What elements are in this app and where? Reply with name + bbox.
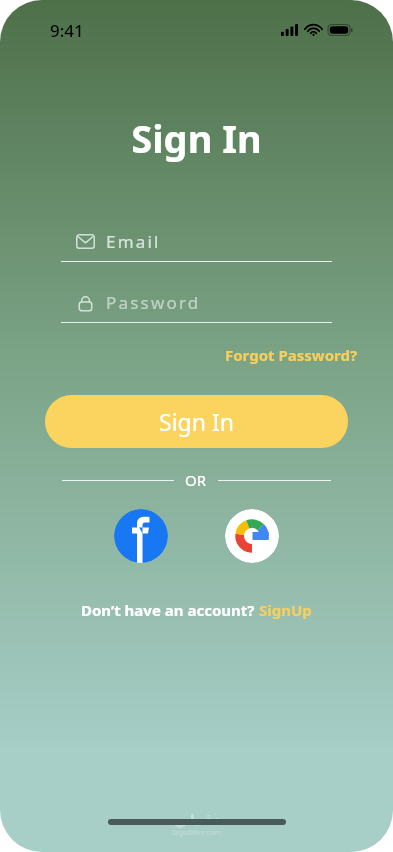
button[interactable]: Sign in with Facebook bbox=[114, 509, 168, 563]
button[interactable]: Forgot Password? bbox=[223, 343, 360, 367]
staticText: Password bbox=[106, 291, 201, 314]
staticText: تقدلي bbox=[174, 811, 220, 828]
staticText: tagadalee.com bbox=[172, 828, 221, 838]
staticText: 9:41 bbox=[50, 19, 84, 42]
staticText: Sign In bbox=[131, 112, 262, 164]
button[interactable]: Don’t have an account? bbox=[77, 597, 316, 623]
staticText: SignUp bbox=[259, 600, 312, 620]
button[interactable]: Password bbox=[61, 291, 332, 323]
button[interactable]: Sign in with Google bbox=[225, 509, 279, 563]
staticText: OR bbox=[185, 470, 207, 490]
staticText: Don’t have an account? bbox=[81, 600, 259, 620]
staticText: Forgot Password? bbox=[225, 345, 358, 365]
staticText: Sign In bbox=[159, 406, 234, 437]
staticText: Email bbox=[106, 230, 161, 253]
button[interactable]: Email bbox=[61, 230, 332, 262]
button[interactable]: Sign In bbox=[45, 395, 348, 448]
